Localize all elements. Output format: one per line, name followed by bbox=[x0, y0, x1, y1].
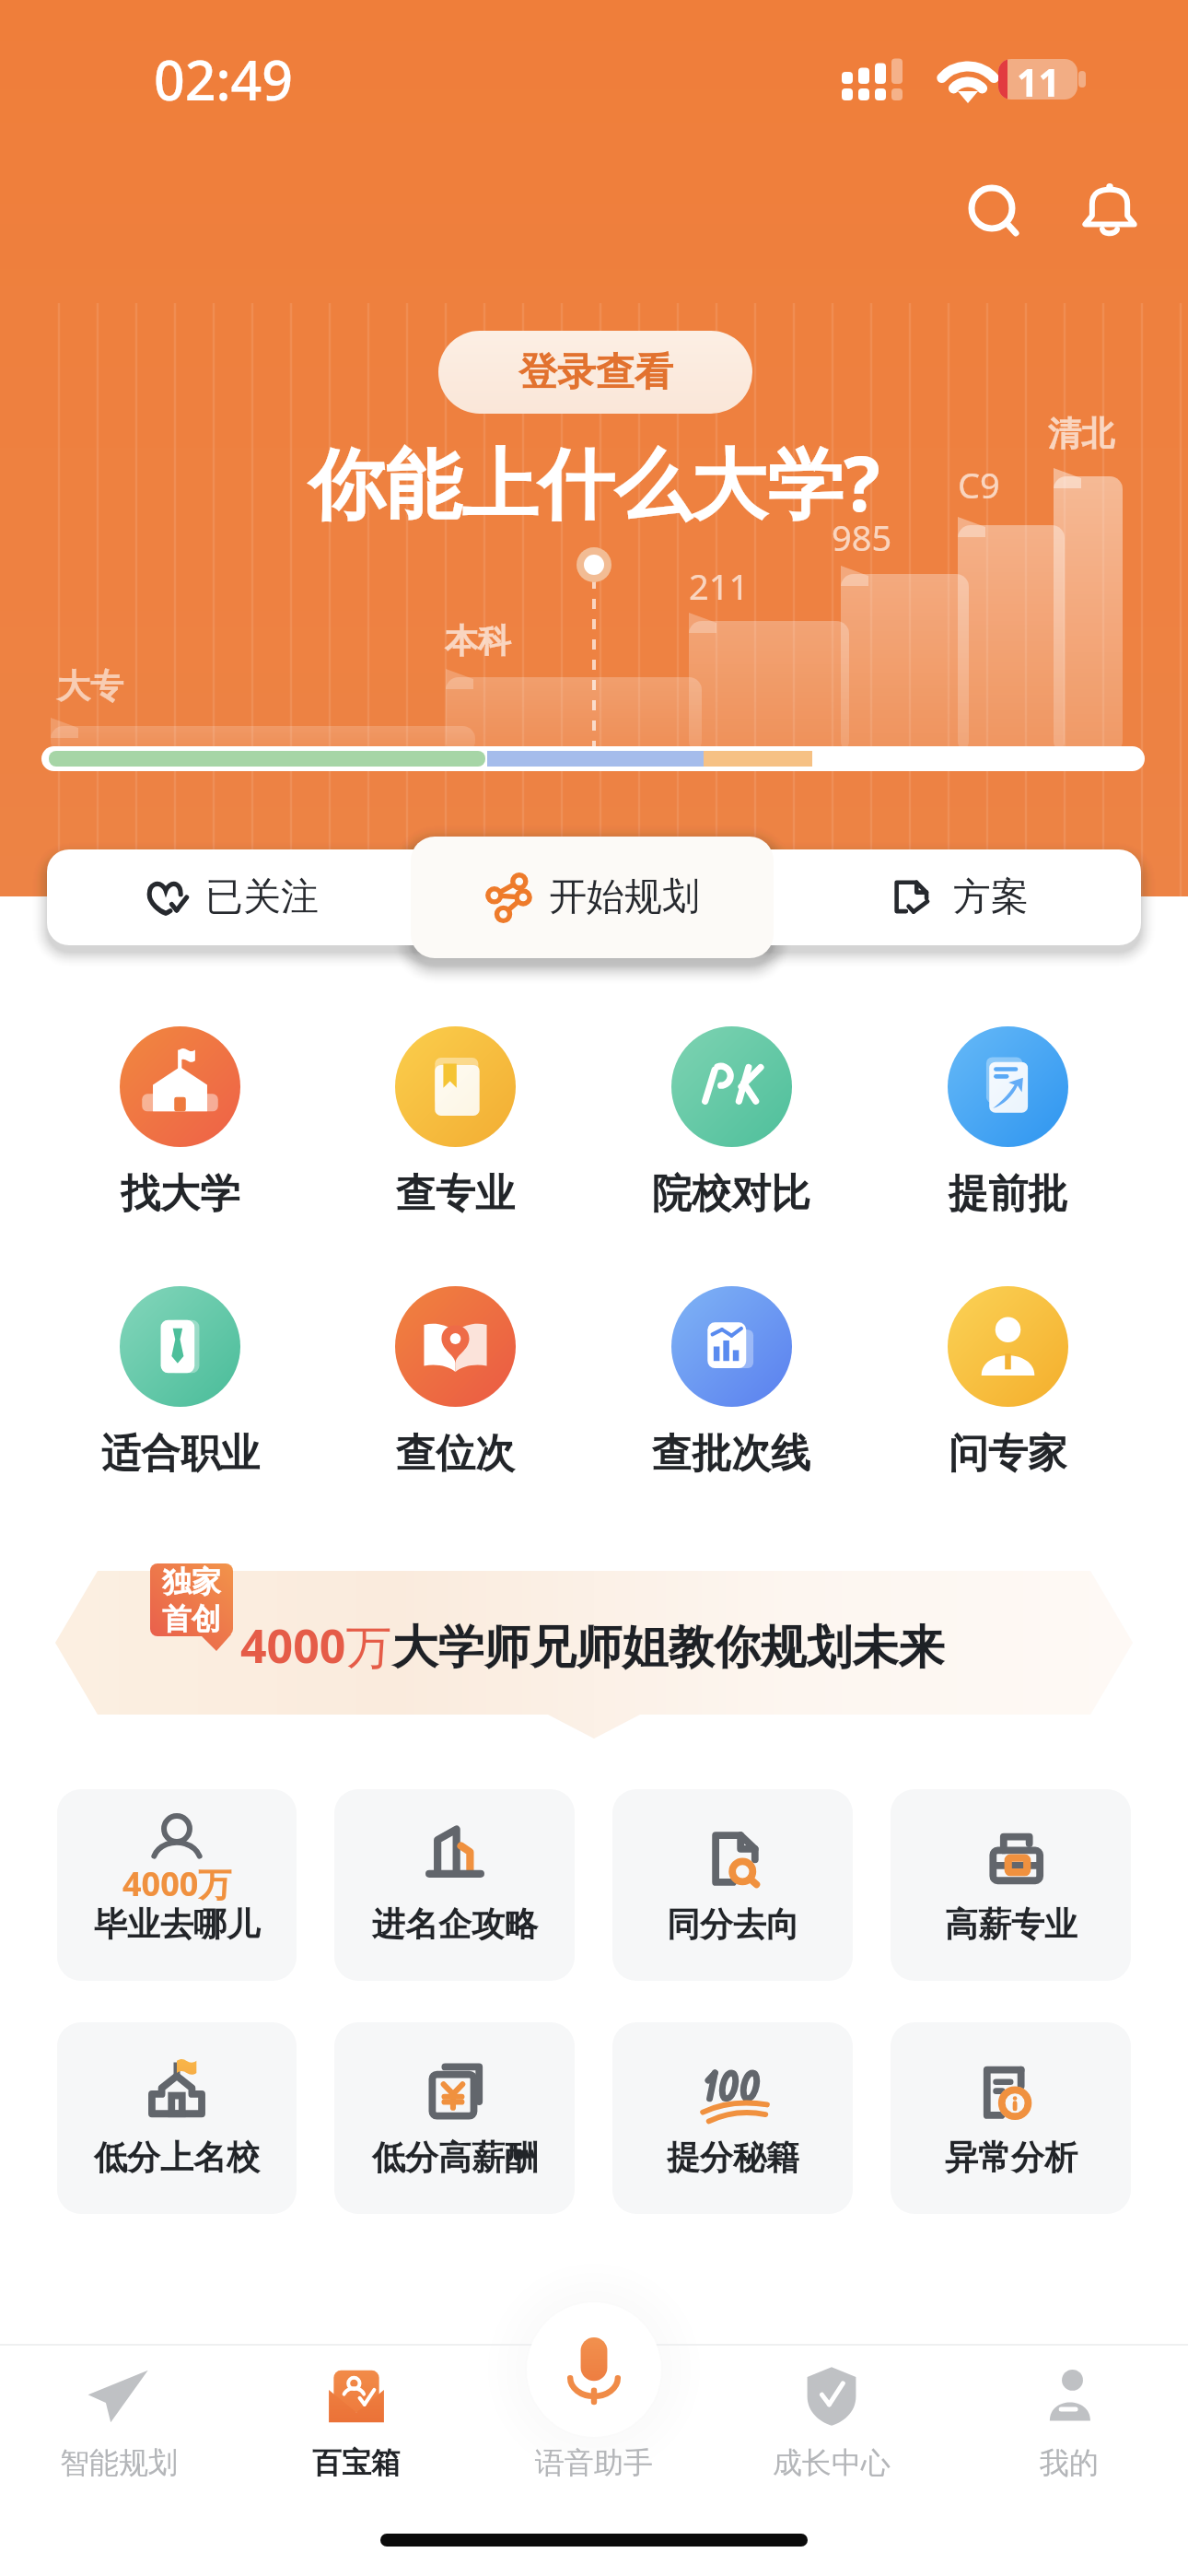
staticText: 已关注 bbox=[205, 873, 319, 921]
staticText: 211 bbox=[689, 562, 750, 610]
staticText: 4000万大学师兄师姐教你规划未来 bbox=[240, 1614, 945, 1677]
button[interactable]: 登录查看 bbox=[438, 331, 752, 414]
staticText: 查批次线 bbox=[652, 1429, 810, 1479]
button[interactable]: 语音助手 bbox=[475, 2344, 713, 2528]
button[interactable]: 异常分析 bbox=[891, 2022, 1131, 2214]
staticText: 11 bbox=[1017, 56, 1060, 108]
staticText: 语音助手 bbox=[535, 2444, 653, 2481]
button[interactable]: Notifications bbox=[1067, 166, 1152, 251]
staticText: 大专 bbox=[57, 665, 123, 707]
button[interactable]: 问专家 bbox=[869, 1286, 1146, 1479]
button[interactable]: 提前批 bbox=[869, 1026, 1146, 1219]
staticText: 找大学 bbox=[121, 1169, 239, 1219]
staticText: 问专家 bbox=[949, 1429, 1067, 1479]
staticText: 成长中心 bbox=[773, 2444, 891, 2481]
button[interactable]: 查位次 bbox=[318, 1286, 593, 1479]
staticText: 02:49 bbox=[154, 42, 294, 116]
staticText: 异常分析 bbox=[945, 2137, 1077, 2178]
staticText: 清北 bbox=[1048, 413, 1114, 454]
button[interactable]: 已关注 bbox=[47, 849, 412, 945]
staticText: 低分上名校 bbox=[94, 2137, 260, 2178]
staticText: 提分秘籍 bbox=[667, 2137, 799, 2178]
button[interactable]: Search bbox=[949, 166, 1034, 251]
staticText: 我的 bbox=[1040, 2444, 1099, 2481]
button[interactable]: 适合职业 bbox=[42, 1286, 318, 1479]
button[interactable]: 百宝箱 bbox=[238, 2344, 475, 2528]
button[interactable]: 查批次线 bbox=[593, 1286, 869, 1479]
staticText: 本科 bbox=[445, 620, 511, 662]
button[interactable]: 智能规划 bbox=[0, 2344, 238, 2528]
button[interactable]: 4000万 bbox=[57, 1789, 297, 1981]
button[interactable]: 同分去向 bbox=[612, 1789, 853, 1981]
staticText: 低分高薪酬 bbox=[372, 2137, 538, 2178]
button[interactable]: 找大学 bbox=[42, 1026, 318, 1219]
staticText: 毕业去哪儿 bbox=[94, 1903, 260, 1945]
staticText: C9 bbox=[958, 461, 1000, 509]
staticText: 985 bbox=[832, 513, 892, 561]
button[interactable]: 成长中心 bbox=[713, 2344, 950, 2528]
staticText: 独家 bbox=[162, 1563, 221, 1600]
button[interactable]: 低分高薪酬 bbox=[334, 2022, 575, 2214]
button[interactable]: Voice assistant bbox=[527, 2302, 661, 2437]
button[interactable]: 进名企攻略 bbox=[334, 1789, 575, 1981]
staticText: 首创 bbox=[162, 1600, 221, 1636]
staticText: 登录查看 bbox=[518, 348, 673, 397]
button[interactable]: 开始规划 bbox=[411, 837, 774, 958]
staticText: 智能规划 bbox=[60, 2444, 178, 2481]
staticText: 百宝箱 bbox=[312, 2444, 401, 2481]
staticText: 你能上什么大学? bbox=[309, 429, 880, 533]
staticText: 开始规划 bbox=[549, 873, 700, 921]
button[interactable]: 查专业 bbox=[318, 1026, 593, 1219]
staticText: 提前批 bbox=[949, 1169, 1067, 1219]
button[interactable]: 方案 bbox=[776, 849, 1141, 945]
staticText: 查专业 bbox=[396, 1169, 515, 1219]
staticText: 4000万 bbox=[122, 1861, 232, 1906]
staticText: 同分去向 bbox=[667, 1903, 799, 1945]
staticText: 方案 bbox=[953, 873, 1029, 921]
button[interactable]: 低分上名校 bbox=[57, 2022, 297, 2214]
button[interactable]: 高薪专业 bbox=[891, 1789, 1131, 1981]
button[interactable]: 提分秘籍 bbox=[612, 2022, 853, 2214]
staticText: 院校对比 bbox=[652, 1169, 810, 1219]
staticText: 高薪专业 bbox=[945, 1903, 1077, 1945]
button[interactable]: 院校对比 bbox=[593, 1026, 869, 1219]
staticText: 查位次 bbox=[396, 1429, 515, 1479]
staticText: 进名企攻略 bbox=[372, 1903, 538, 1945]
button[interactable]: 我的 bbox=[950, 2344, 1188, 2528]
staticText: 适合职业 bbox=[101, 1429, 260, 1479]
